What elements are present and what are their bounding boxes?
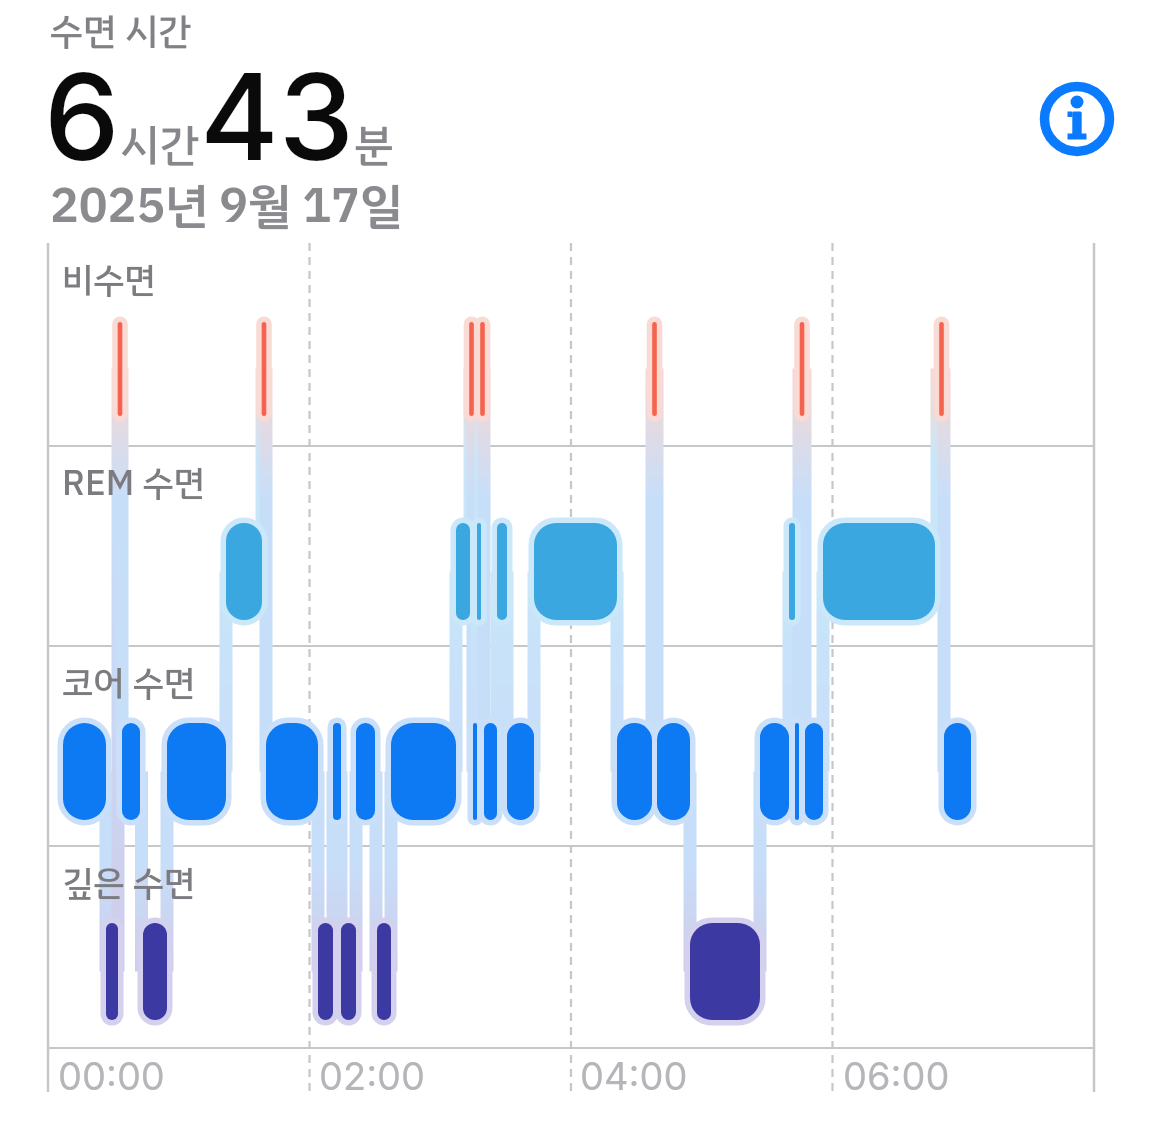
- staticText: 깊은 수면: [62, 857, 196, 910]
- staticText: REM 수면: [62, 457, 205, 510]
- staticText: 코어 수면: [62, 657, 196, 710]
- staticText: 비수면: [62, 254, 156, 307]
- staticText: 04:00: [580, 1053, 688, 1099]
- staticText: 00:00: [58, 1053, 165, 1099]
- staticText: 06:00: [843, 1053, 950, 1099]
- staticText: 43: [200, 44, 354, 189]
- staticText: 수면 시간: [50, 4, 191, 60]
- staticText: 시간: [120, 112, 199, 178]
- button[interactable]: [1035, 77, 1119, 161]
- staticText: 6: [44, 44, 120, 189]
- staticText: 02:00: [319, 1053, 426, 1099]
- staticText: 2025년 9월 17일: [50, 170, 403, 242]
- staticText: 분: [354, 112, 394, 178]
